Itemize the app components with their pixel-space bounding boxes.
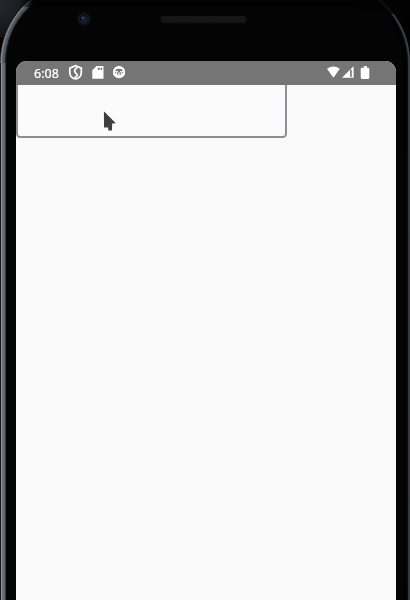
button[interactable] xyxy=(16,81,287,138)
staticText: 6:08 xyxy=(34,65,59,82)
